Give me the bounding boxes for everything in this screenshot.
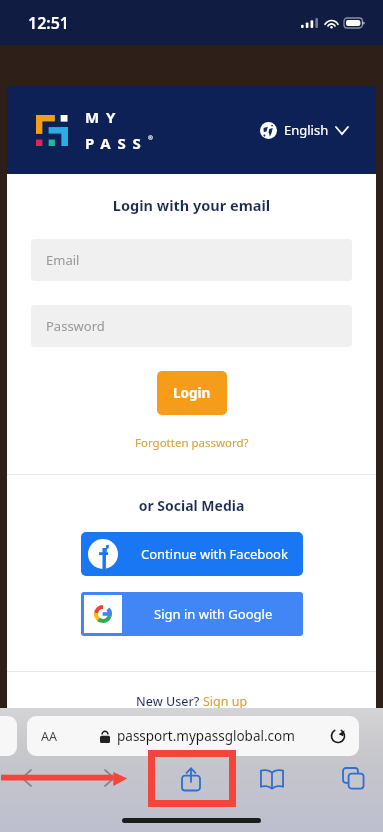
staticText: or Social Media (7, 496, 376, 515)
staticText: ® (148, 134, 153, 142)
button[interactable]: Share (175, 762, 207, 796)
button[interactable]: Forgotten password? (135, 435, 249, 451)
staticText: Login (173, 384, 211, 402)
button[interactable]: Sign up (203, 693, 248, 710)
staticText: English (284, 121, 329, 139)
button[interactable]: Tabs (338, 764, 368, 792)
staticText: Sign in with Google (154, 605, 273, 623)
staticText: PASS (85, 133, 148, 153)
staticText: AA (41, 728, 57, 745)
button[interactable]: MY (36, 107, 153, 153)
button[interactable]: Login (157, 371, 227, 415)
button[interactable]: Bookmarks (256, 765, 287, 792)
button[interactable]: Forward (97, 764, 122, 792)
staticText: Password (46, 317, 105, 335)
button[interactable]: AA (27, 716, 359, 756)
staticText: Email (46, 251, 80, 269)
button[interactable]: Email (31, 239, 352, 281)
staticText: passport.mypassglobal.com (117, 727, 295, 745)
button[interactable]: Previous tab (0, 716, 17, 756)
staticText: Continue with Facebook (141, 545, 288, 563)
button[interactable]: Back (14, 764, 39, 792)
button[interactable]: English (260, 121, 348, 139)
staticText: 12:51 (28, 12, 70, 34)
staticText: MY (85, 107, 123, 127)
button[interactable]: Sign in with Google (81, 592, 303, 636)
button[interactable]: Continue with Facebook (81, 532, 303, 576)
staticText: Login with your email (7, 195, 376, 215)
staticText: New User? (136, 693, 203, 710)
button[interactable]: Password (31, 305, 352, 347)
